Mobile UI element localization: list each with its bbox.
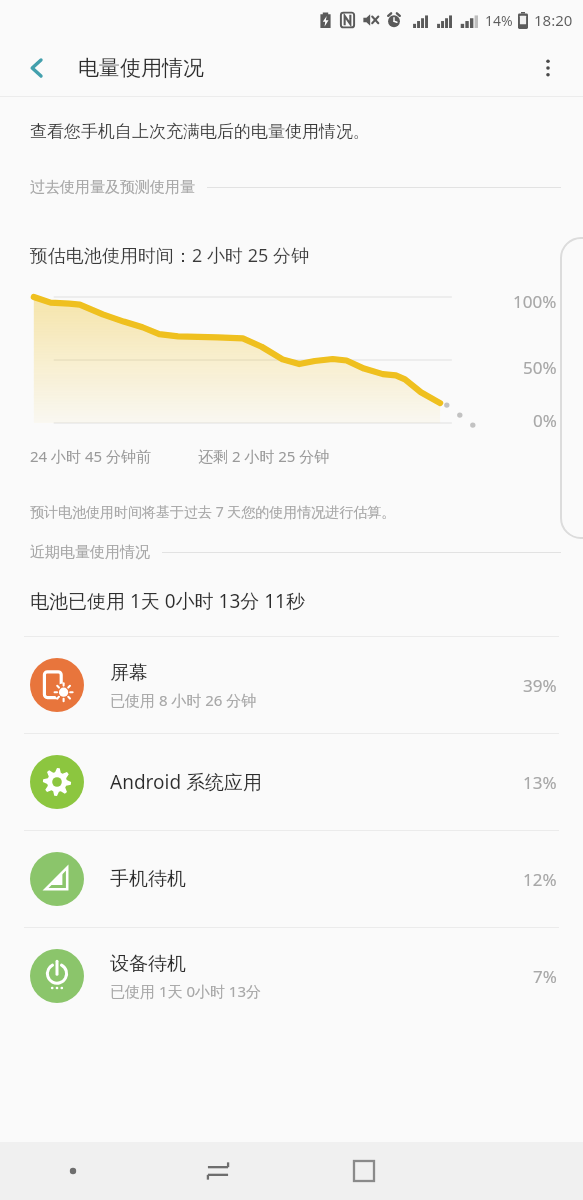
staticText: 0%	[533, 409, 557, 432]
staticText: 还剩 2 小时 25 分钟	[198, 446, 330, 466]
staticText: 电池已使用 1天 0小时 13分 11秒	[30, 588, 305, 614]
staticText: 50%	[523, 356, 557, 379]
button[interactable]: Back	[14, 45, 60, 91]
staticText: 100%	[513, 290, 557, 313]
staticText: 24 小时 45 分钟前	[30, 446, 152, 466]
button[interactable]: Recents	[291, 1142, 437, 1200]
button[interactable]: Menu	[0, 1142, 145, 1200]
staticText: 13%	[523, 771, 557, 794]
button[interactable]: Back	[145, 1142, 291, 1200]
staticText: 电量使用情况	[78, 55, 204, 81]
staticText: 近期电量使用情况	[30, 543, 150, 562]
staticText: 12%	[523, 868, 557, 891]
button[interactable]: 屏幕	[0, 637, 583, 733]
staticText: 18:20	[534, 10, 573, 30]
staticText: 预估电池使用时间：2 小时 25 分钟	[30, 243, 309, 268]
button[interactable]: More options	[525, 45, 571, 91]
staticText: 过去使用量及预测使用量	[30, 178, 195, 197]
staticText: Android 系统应用	[110, 769, 263, 795]
staticText: 已使用 1天 0小时 13分	[110, 981, 262, 1001]
button[interactable]: 手机待机	[0, 831, 583, 927]
button[interactable]: Android 系统应用	[0, 734, 583, 830]
staticText: 39%	[523, 674, 557, 697]
staticText: 屏幕	[110, 661, 148, 685]
staticText: 手机待机	[110, 867, 186, 891]
staticText: 已使用 8 小时 26 分钟	[110, 690, 257, 710]
staticText: 查看您手机自上次充满电后的电量使用情况。	[30, 121, 370, 142]
button[interactable]: 设备待机	[0, 928, 583, 1024]
staticText: 7%	[533, 965, 557, 988]
staticText: 设备待机	[110, 952, 186, 976]
staticText: 14%	[485, 11, 513, 30]
staticText: 预计电池使用时间将基于过去 7 天您的使用情况进行估算。	[30, 502, 396, 521]
